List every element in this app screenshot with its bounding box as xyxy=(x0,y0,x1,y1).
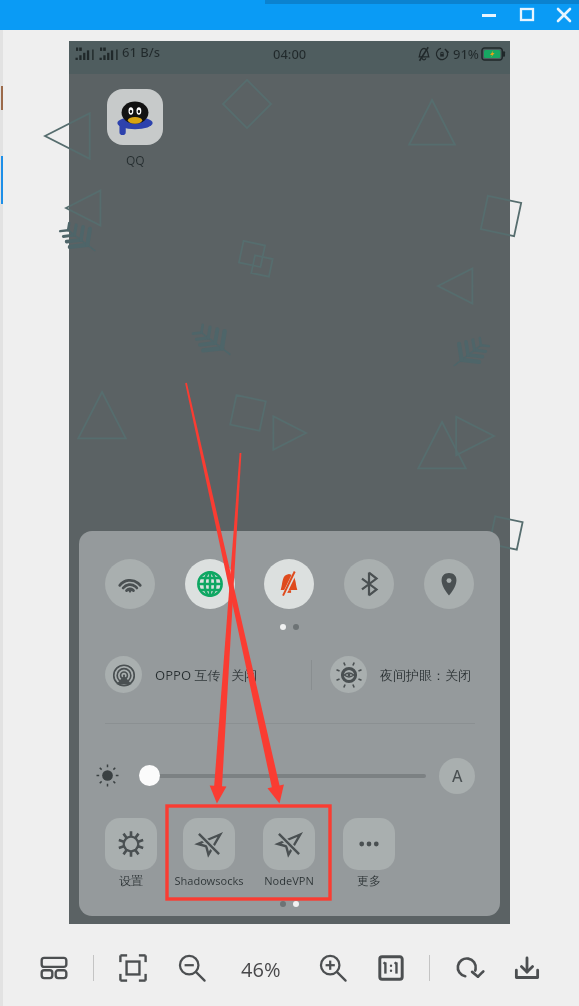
staticText: NodeVPN xyxy=(264,873,314,888)
button[interactable]: 更多 xyxy=(343,818,395,870)
button[interactable]: Actual size xyxy=(370,947,412,989)
button[interactable]: Auto brightness xyxy=(439,758,475,794)
button[interactable]: 夜间护眼：关闭 xyxy=(330,656,471,693)
staticText: 91% xyxy=(453,45,479,63)
staticText: OPPO 互传 xyxy=(155,666,221,684)
button[interactable]: QQ xyxy=(107,89,163,145)
button[interactable]: Quick toggle xyxy=(344,559,394,609)
button[interactable]: 46% xyxy=(230,951,291,987)
button[interactable]: Zoom in xyxy=(312,947,354,989)
button[interactable]: Close xyxy=(541,0,579,30)
staticText: A xyxy=(452,765,463,787)
button[interactable]: Quick toggle xyxy=(424,559,474,609)
staticText: 04:00 xyxy=(273,45,307,63)
staticText: 关闭 xyxy=(231,667,257,683)
button[interactable]: Save xyxy=(506,947,548,989)
button[interactable]: Minimize xyxy=(466,0,512,30)
button[interactable]: Maximize xyxy=(504,0,550,30)
button[interactable]: Quick toggle xyxy=(264,559,314,609)
staticText: 设置 xyxy=(119,873,143,888)
button[interactable]: Rotate xyxy=(448,947,490,989)
staticText: Shadowsocks xyxy=(174,873,244,888)
staticText: 46% xyxy=(241,956,281,983)
button[interactable]: Brightness xyxy=(139,765,160,786)
button[interactable]: Fit to window xyxy=(112,947,154,989)
button[interactable]: OPPO 互传 xyxy=(105,656,257,693)
button[interactable]: Zoom out xyxy=(171,947,213,989)
staticText: 61 B/s xyxy=(122,43,161,61)
button[interactable]: Shadowsocks xyxy=(183,818,235,870)
button[interactable]: Quick toggle xyxy=(105,559,155,609)
staticText: QQ xyxy=(126,152,145,168)
staticText: 更多 xyxy=(357,873,381,888)
button[interactable]: NodeVPN xyxy=(263,818,315,870)
button[interactable]: Thumbnails xyxy=(33,947,75,989)
button[interactable]: 设置 xyxy=(105,818,157,870)
button[interactable]: Quick toggle xyxy=(185,559,235,609)
staticText: 夜间护眼：关闭 xyxy=(380,667,471,683)
